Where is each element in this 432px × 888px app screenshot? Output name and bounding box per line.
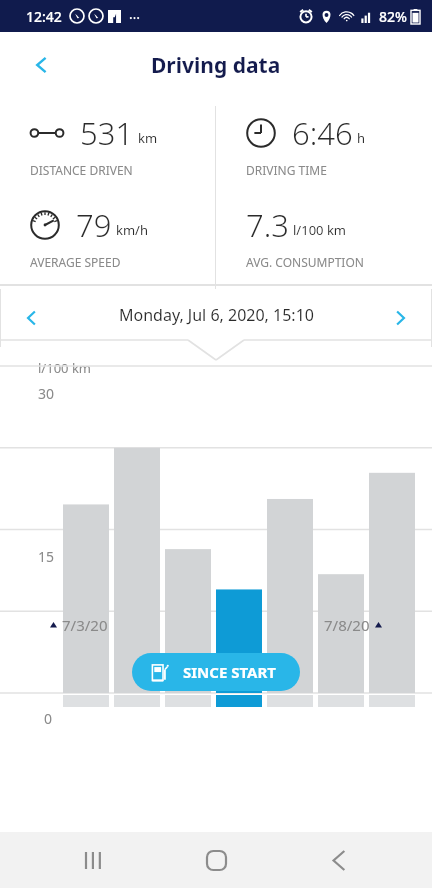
staticText: l/100 km <box>293 221 346 239</box>
staticText: 79 <box>76 204 112 246</box>
staticText: km <box>138 129 158 147</box>
staticText: 82% <box>379 7 407 26</box>
staticText: 7.3 <box>246 204 289 246</box>
staticText: Driving data <box>151 51 281 80</box>
staticText: 15 <box>38 547 55 566</box>
staticText: AVERAGE SPEED <box>30 254 121 270</box>
staticText: 6:46 <box>292 112 353 154</box>
button[interactable]: Recent apps <box>66 832 122 888</box>
button[interactable]: SINCE START <box>132 653 300 691</box>
staticText: DISTANCE DRIVEN <box>30 162 133 178</box>
staticText: 531 <box>80 112 134 154</box>
staticText: Monday, Jul 6, 2020, 15:10 <box>119 304 314 326</box>
staticText: AVG. CONSUMPTION <box>246 254 364 270</box>
staticText: l/100 km <box>38 359 91 377</box>
button[interactable]: Previous day <box>8 294 56 342</box>
staticText: SINCE START <box>183 662 276 682</box>
button[interactable]: Back <box>310 832 366 888</box>
staticText: h <box>357 129 366 147</box>
staticText: 7/3/20 <box>62 615 108 635</box>
button[interactable]: Home <box>188 832 244 888</box>
staticText: 7/8/20 <box>324 615 370 635</box>
staticText: 0 <box>44 709 53 728</box>
staticText: DRIVING TIME <box>246 162 327 178</box>
staticText: km/h <box>116 221 148 239</box>
button[interactable]: Back <box>20 43 64 87</box>
staticText: 12:42 <box>26 7 62 26</box>
staticText: 30 <box>38 384 55 403</box>
button[interactable]: Next day <box>376 294 424 342</box>
